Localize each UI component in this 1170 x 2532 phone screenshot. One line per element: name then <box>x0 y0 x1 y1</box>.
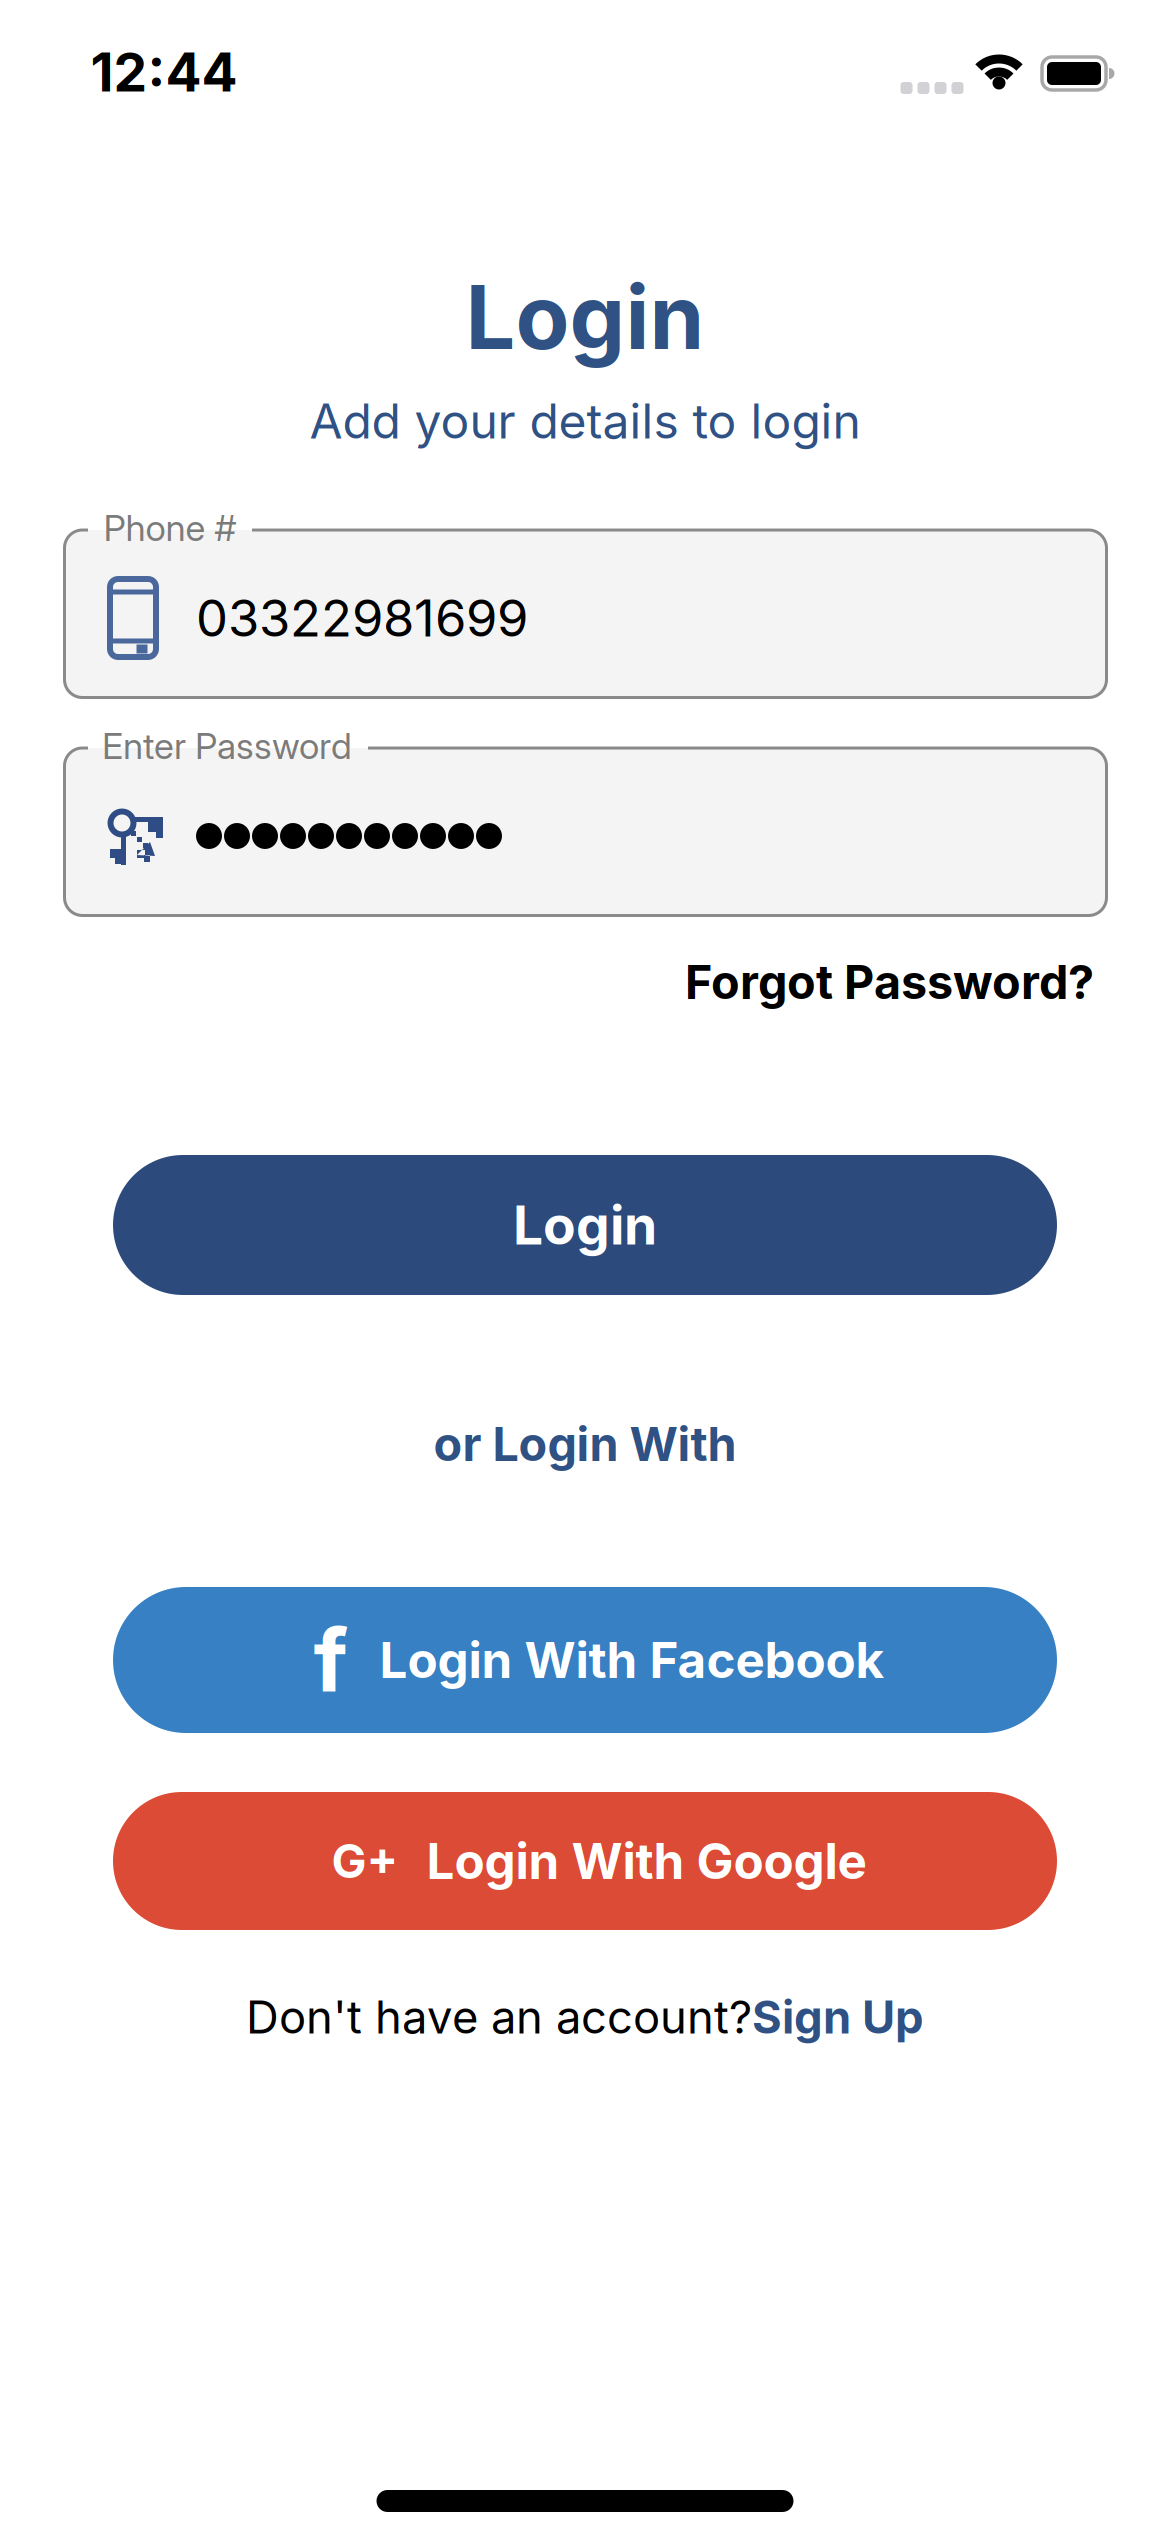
button[interactable]: Phone # <box>63 507 1108 699</box>
staticText: 03322981699 <box>196 588 528 648</box>
staticText: f <box>313 1609 347 1711</box>
button[interactable]: G+ <box>113 1792 1057 1930</box>
button[interactable]: Sign Up <box>752 1990 924 2044</box>
staticText: Sign Up <box>752 1990 924 2044</box>
staticText: Forgot Password? <box>685 954 1094 1010</box>
staticText: Add your details to login <box>309 393 860 449</box>
staticText: Enter Password <box>102 725 352 767</box>
button[interactable]: Login <box>113 1155 1057 1295</box>
staticText: Login <box>465 265 704 369</box>
staticText: Don't have an account? <box>246 1990 752 2044</box>
staticText: Login With Google <box>426 1832 866 1890</box>
button[interactable]: Enter Password <box>63 725 1108 917</box>
staticText: Phone # <box>103 507 236 549</box>
staticText: Login With Facebook <box>379 1631 884 1689</box>
staticText: 12:44 <box>90 40 237 103</box>
staticText: G+ <box>331 1833 398 1889</box>
button[interactable]: f <box>113 1587 1057 1733</box>
button[interactable]: Forgot Password? <box>685 954 1094 1010</box>
staticText: Login <box>513 1193 657 1256</box>
staticText: or Login With <box>433 1416 736 1472</box>
